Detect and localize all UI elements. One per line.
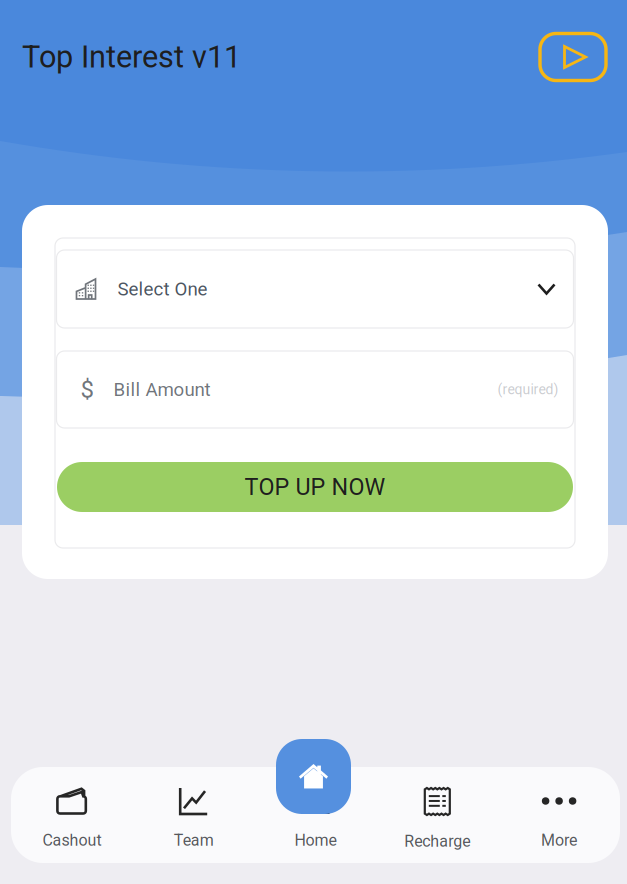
button[interactable]: Play tutorial [537,30,609,84]
staticText: Team [174,831,214,850]
button[interactable]: More [498,767,620,863]
button[interactable]: Home [255,767,376,863]
staticText: Top Interest v11 [22,39,241,75]
button[interactable]: Recharge [376,767,498,863]
staticText: Bill Amount [113,379,210,400]
staticText: Home [294,831,336,850]
staticText: Cashout [42,831,101,850]
button[interactable]: Home [276,739,351,814]
button[interactable]: Cashout [11,767,133,863]
staticText: $ [80,375,93,403]
staticText: Select One [117,278,207,300]
staticText: Recharge [404,832,470,851]
staticText: (required) [497,381,558,398]
button[interactable]: Team [133,767,255,863]
button[interactable]: TOP UP NOW [57,462,573,512]
staticText: TOP UP NOW [244,473,385,501]
button[interactable]: Select One [56,250,573,328]
staticText: More [541,831,577,850]
